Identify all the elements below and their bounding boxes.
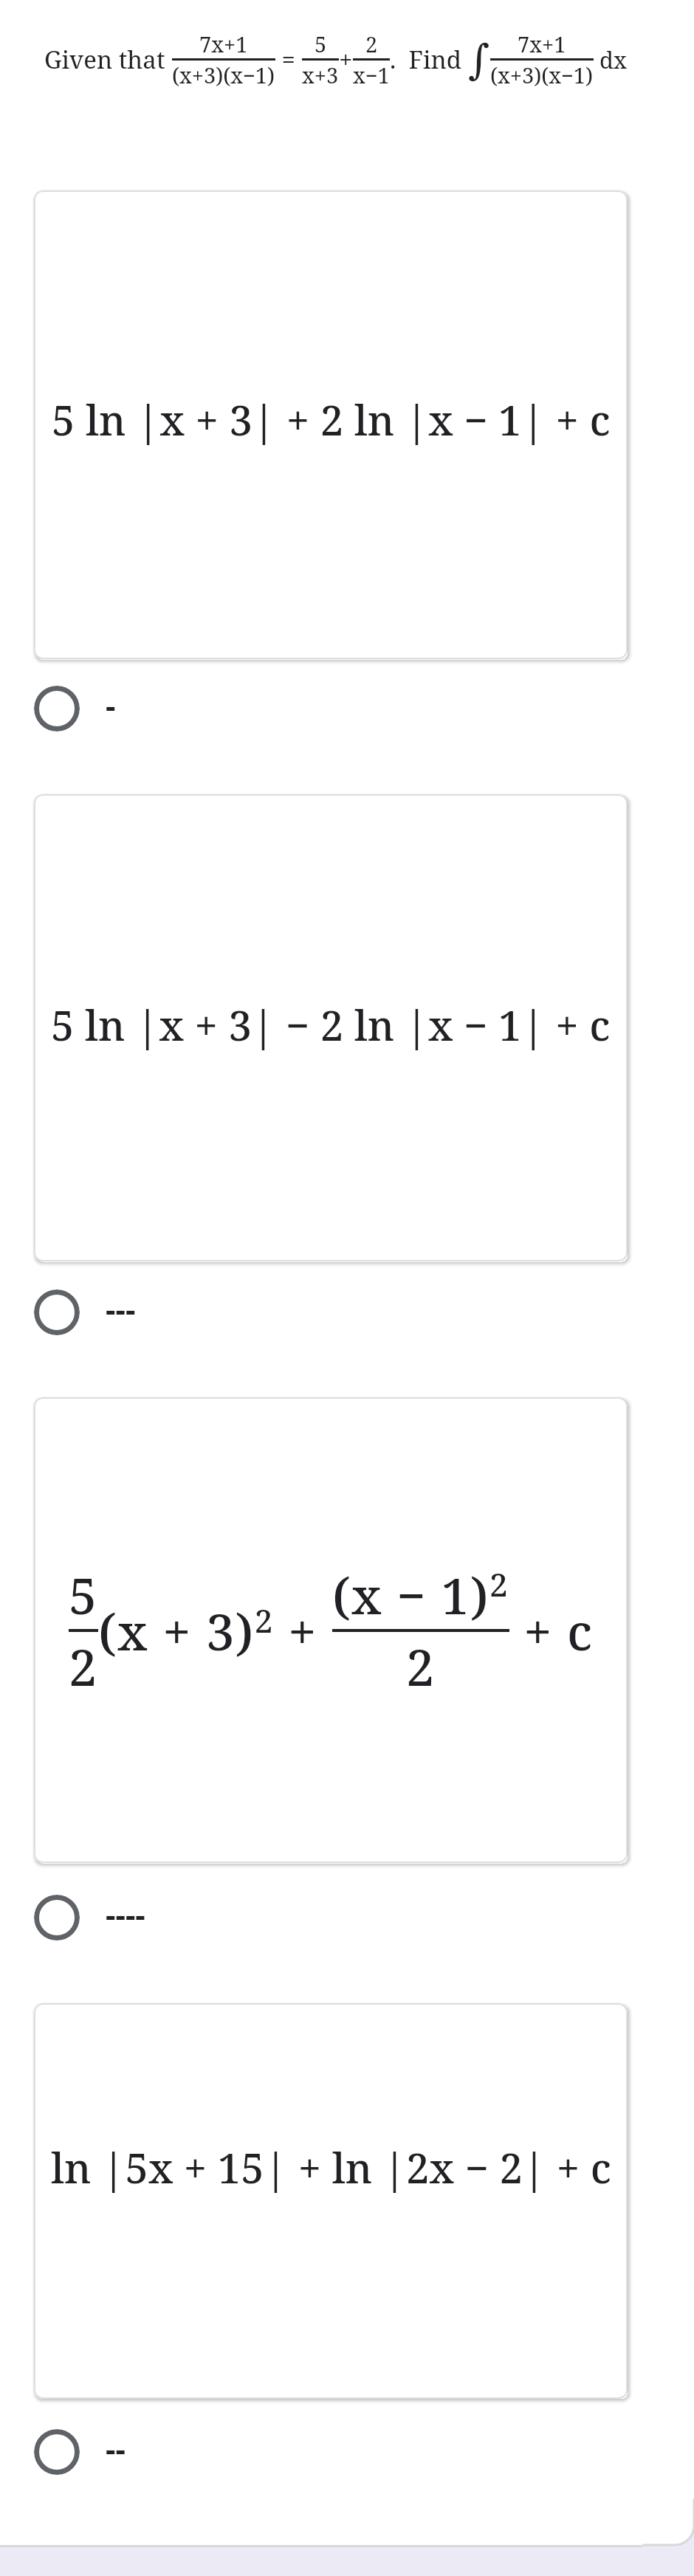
button[interactable]: 5 ln |x + 3| + 2 ln |x − 1| + c — [34, 190, 628, 659]
staticText: ---- — [106, 1893, 145, 1932]
staticText: . Find — [390, 43, 468, 76]
button[interactable] — [34, 1289, 80, 1335]
button[interactable] — [34, 2429, 80, 2475]
staticText: 2 — [406, 1632, 436, 1701]
staticText: (x+3)(x−1) — [172, 61, 275, 89]
staticText: x+3 — [302, 61, 339, 89]
button[interactable] — [34, 1895, 80, 1940]
button[interactable]: 5 ln |x + 3| − 2 ln |x − 1| + c — [34, 794, 628, 1261]
staticText: 5 ln |x + 3| − 2 ln |x − 1| + c — [51, 996, 611, 1053]
staticText: x−1 — [353, 61, 390, 89]
staticText: 5 ln |x + 3| + 2 ln |x − 1| + c — [52, 391, 611, 447]
staticText: dx — [594, 44, 628, 75]
button[interactable]: ln |5x + 15| + ln |2x − 2| + c — [34, 2003, 628, 2399]
staticText: 2 — [69, 1632, 98, 1701]
staticText: (x − 1)2 — [332, 1560, 509, 1629]
staticText: + c — [509, 1597, 594, 1665]
button[interactable] — [34, 686, 80, 731]
staticText: 5 — [315, 30, 327, 58]
staticText: ∫ — [468, 35, 490, 83]
staticText: 7x+1 — [199, 30, 248, 58]
staticText: 2 — [365, 30, 378, 58]
staticText: + — [339, 43, 353, 76]
staticText: --- — [106, 1288, 136, 1326]
staticText: Given that — [44, 43, 172, 76]
staticText: 7x+1 — [518, 30, 566, 58]
staticText: - — [106, 684, 116, 723]
staticText: ln |5x + 15| + ln |2x − 2| + c — [51, 2139, 611, 2195]
staticText: = — [275, 43, 302, 76]
staticText: (x+3)(x−1) — [490, 61, 594, 89]
staticText: (x + 3)2 + — [98, 1597, 332, 1665]
staticText: -- — [106, 2428, 126, 2466]
button[interactable]: 5 — [34, 1397, 628, 1863]
staticText: 5 — [69, 1560, 98, 1629]
